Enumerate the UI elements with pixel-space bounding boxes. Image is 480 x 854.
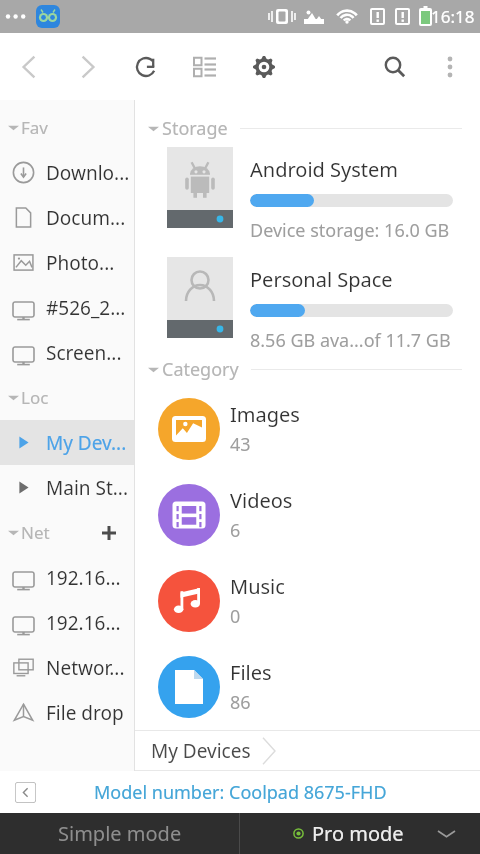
button[interactable]: Simple mode [0,813,239,854]
staticText: Simple mode [58,820,182,847]
staticText: Model number: Coolpad 8675-FHD [94,780,387,805]
button[interactable]: Downlo... [0,150,134,195]
button[interactable]: Videos [135,472,480,558]
button[interactable]: Music [135,558,480,644]
staticText: My Devices [151,738,251,764]
button[interactable]: Refresh [117,33,175,100]
button[interactable]: View mode [175,33,234,100]
button[interactable]: Forward [58,33,117,100]
staticText: Videos [230,487,293,514]
button[interactable]: Android System [135,147,480,243]
staticText: Networ... [46,655,125,681]
button[interactable]: Collapse [15,782,36,803]
button[interactable]: Add network [94,518,124,548]
staticText: Fav [21,116,48,139]
button[interactable]: My Devices [135,736,275,766]
staticText: 86 [230,690,251,715]
staticText: Screen... [46,340,122,366]
button[interactable]: My Dev... [0,420,134,465]
staticText: 16:18 [431,5,475,28]
staticText: Docum... [46,205,126,231]
staticText: 8.56 GB ava...of 11.7 GB [250,328,451,353]
staticText: Storage [162,116,228,141]
staticText: Loc [21,386,49,409]
button[interactable]: Networ... [0,645,134,690]
staticText: Android System [250,156,399,183]
staticText: Personal Space [250,266,393,293]
staticText: 192.16... [46,565,121,591]
button[interactable]: Search [366,33,422,100]
button[interactable]: File drop [0,690,134,735]
staticText: My Dev... [46,430,127,456]
button[interactable]: 192.16... [0,555,134,600]
staticText: Net [21,521,50,544]
staticText: Downlo... [46,160,130,186]
staticText: 0 [230,604,241,629]
button[interactable]: Pro mode [240,813,480,854]
button[interactable]: Back [0,33,58,100]
staticText: Pro mode [312,820,404,847]
staticText: Music [230,573,285,600]
button[interactable]: More options [422,33,477,100]
staticText: Images [230,401,300,428]
button[interactable]: #526_2... [0,285,134,330]
staticText: Photo... [46,250,115,276]
staticText: 6 [230,518,241,543]
staticText: 192.16... [46,610,121,636]
button[interactable]: Docum... [0,195,134,240]
button[interactable]: Files [135,644,480,730]
staticText: Files [230,659,272,686]
staticText: 43 [230,432,251,457]
button[interactable]: Screen... [0,330,134,375]
staticText: Category [162,357,239,382]
staticText: #526_2... [46,295,126,321]
staticText: Main St... [46,475,129,501]
button[interactable]: Settings [234,33,293,100]
staticText: Device storage: 16.0 GB [250,218,450,243]
button[interactable]: Main St... [0,465,134,510]
button[interactable]: Images [135,386,480,472]
staticText: File drop [46,700,124,726]
button[interactable]: Photo... [0,240,134,285]
button[interactable]: Personal Space [135,257,480,353]
button[interactable]: 192.16... [0,600,134,645]
